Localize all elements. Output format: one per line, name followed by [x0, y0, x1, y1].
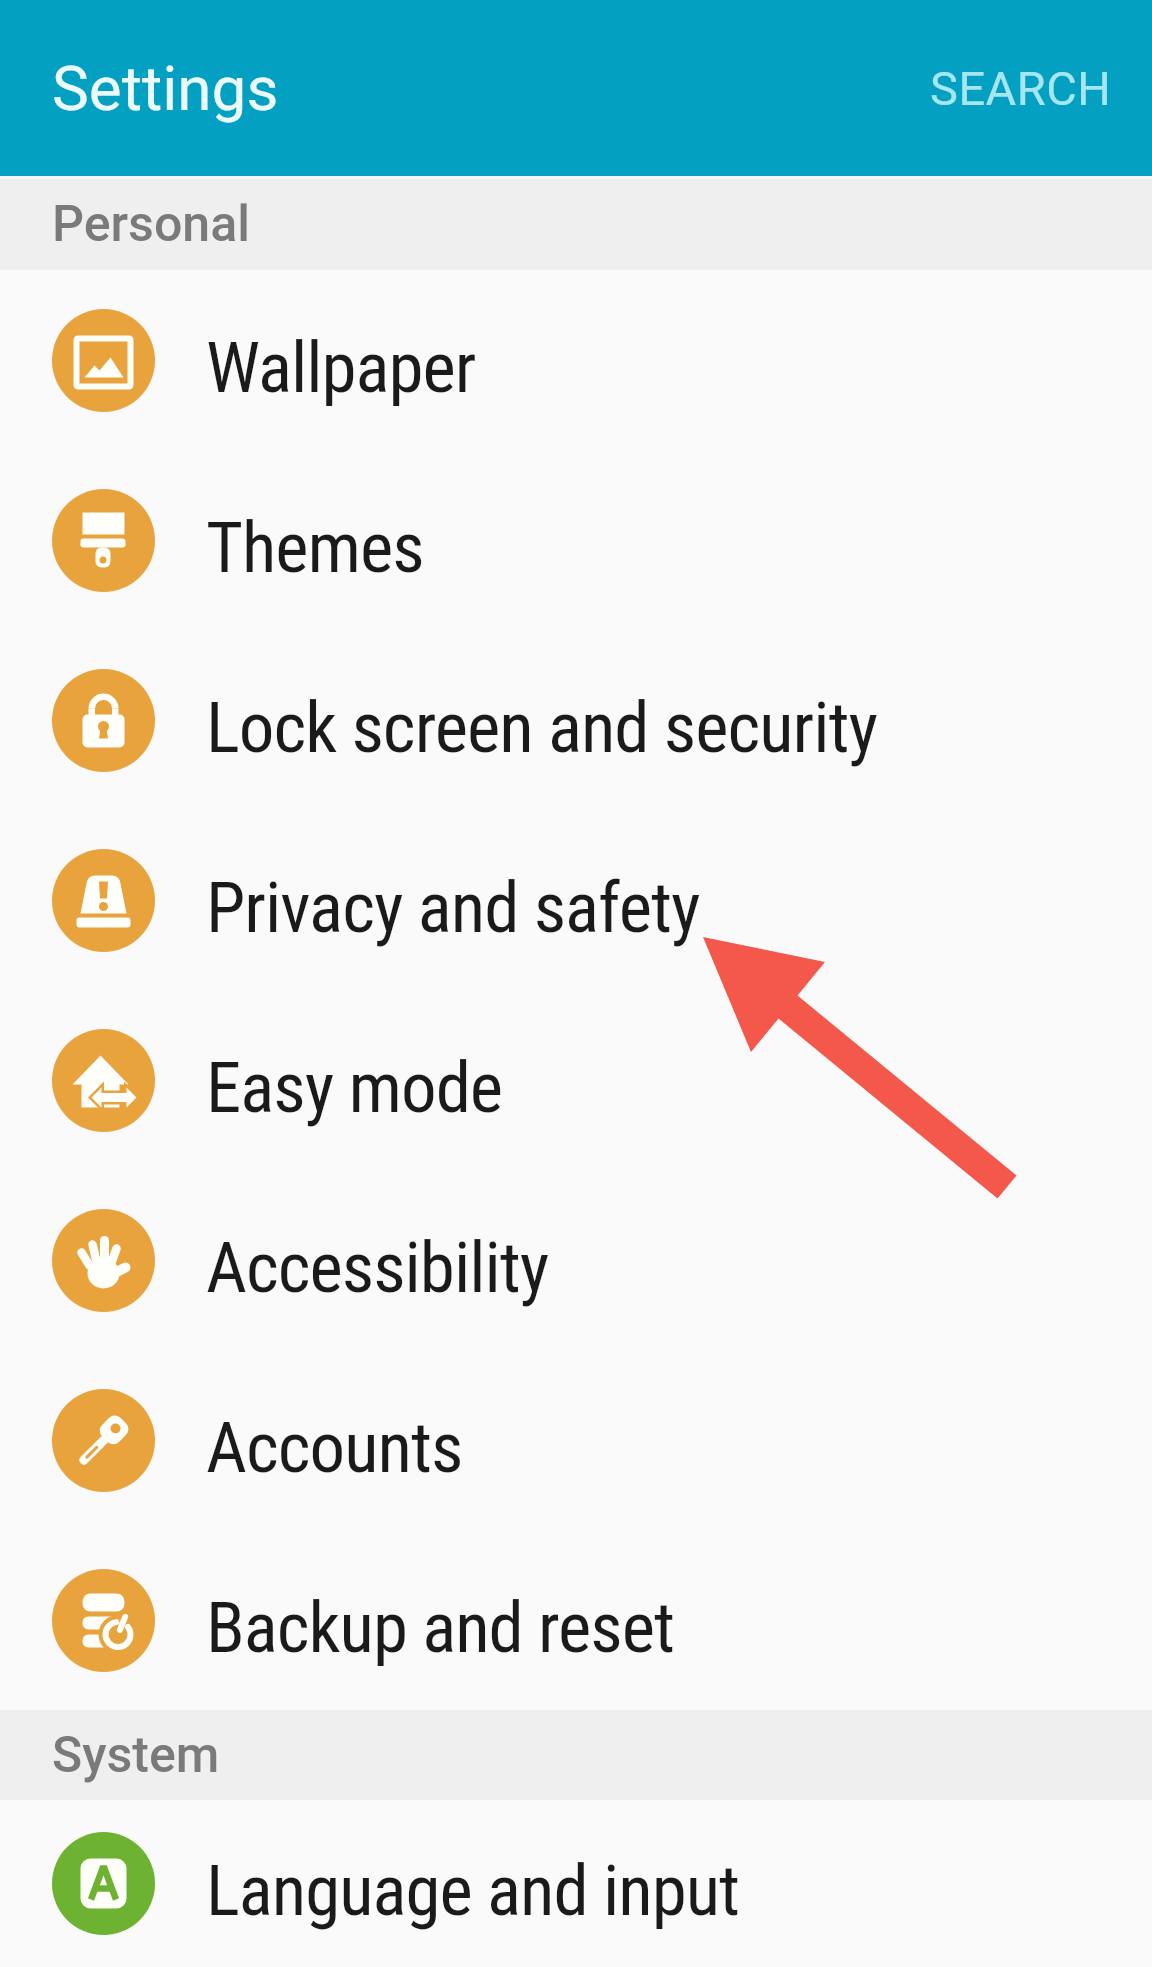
button[interactable]: Accounts: [0, 1350, 1152, 1530]
button[interactable]: Wallpaper: [0, 270, 1152, 450]
staticText: Language and input: [206, 1849, 740, 1932]
staticText: System: [52, 1726, 220, 1785]
staticText: Themes: [206, 506, 424, 589]
staticText: Wallpaper: [206, 326, 476, 409]
button[interactable]: Themes: [0, 450, 1152, 630]
button[interactable]: Backup and reset: [0, 1530, 1152, 1710]
staticText: Lock screen and security: [206, 686, 878, 769]
button[interactable]: Easy mode: [0, 990, 1152, 1170]
button[interactable]: SEARCH: [930, 61, 1112, 116]
button[interactable]: Privacy and safety: [0, 810, 1152, 990]
staticText: Settings: [52, 52, 279, 125]
button[interactable]: Accessibility: [0, 1170, 1152, 1350]
staticText: Accounts: [206, 1406, 463, 1489]
staticText: Accessibility: [206, 1226, 549, 1309]
button[interactable]: Language and input: [0, 1800, 1152, 1967]
staticText: Easy mode: [206, 1046, 503, 1129]
staticText: Personal: [52, 195, 251, 254]
staticText: SEARCH: [930, 61, 1112, 116]
staticText: Backup and reset: [206, 1586, 675, 1669]
staticText: Privacy and safety: [206, 866, 700, 949]
button[interactable]: Lock screen and security: [0, 630, 1152, 810]
